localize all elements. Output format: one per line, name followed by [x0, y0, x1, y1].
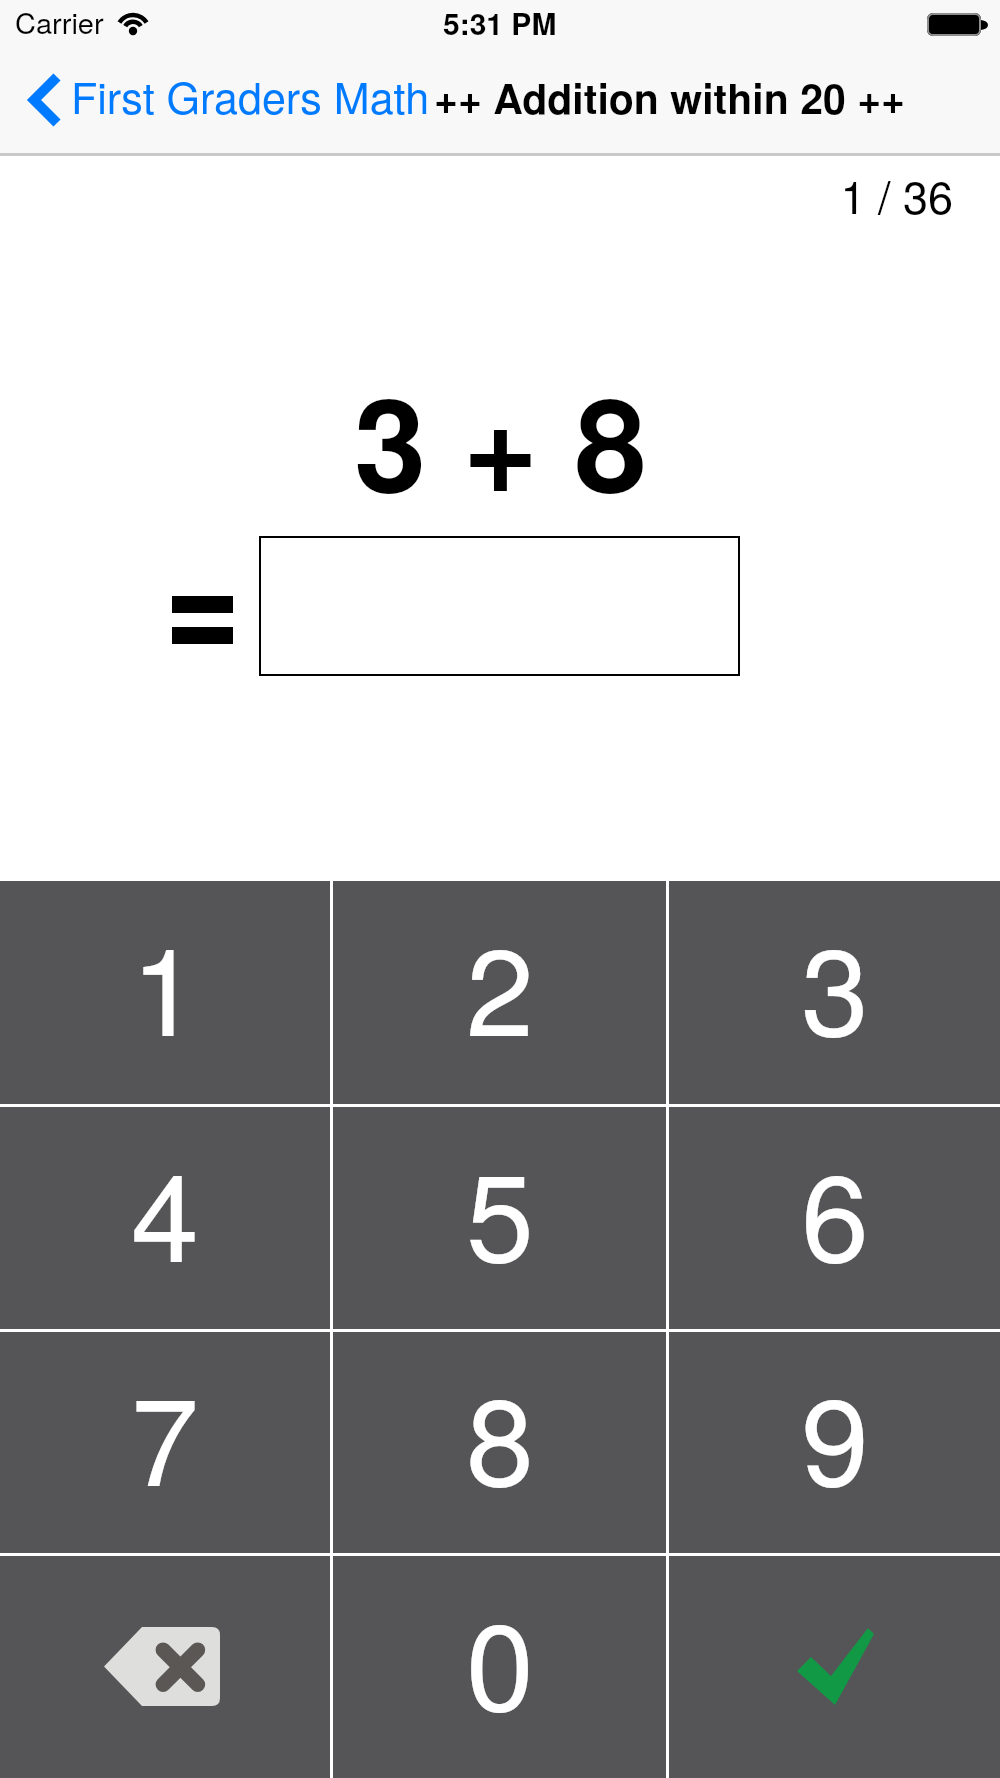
staticText: 1: [131, 896, 199, 1071]
staticText: 5:31 PM: [443, 1, 557, 44]
staticText: 4: [131, 1122, 199, 1297]
staticText: 1 / 36: [0, 162, 953, 226]
staticText: 3: [801, 896, 869, 1071]
staticText: 6: [801, 1122, 869, 1297]
staticText: 2: [466, 896, 534, 1071]
staticText: Carrier: [15, 1, 104, 43]
staticText: 7: [131, 1346, 199, 1521]
staticText: ++ Addition within 20 ++: [434, 68, 906, 127]
staticText: First Graders Math: [71, 65, 430, 127]
staticText: 9: [801, 1346, 869, 1521]
staticText: 0: [466, 1571, 534, 1746]
staticText: 3 + 8: [354, 347, 647, 533]
staticText: 8: [466, 1346, 534, 1521]
staticText: 5: [466, 1122, 534, 1297]
